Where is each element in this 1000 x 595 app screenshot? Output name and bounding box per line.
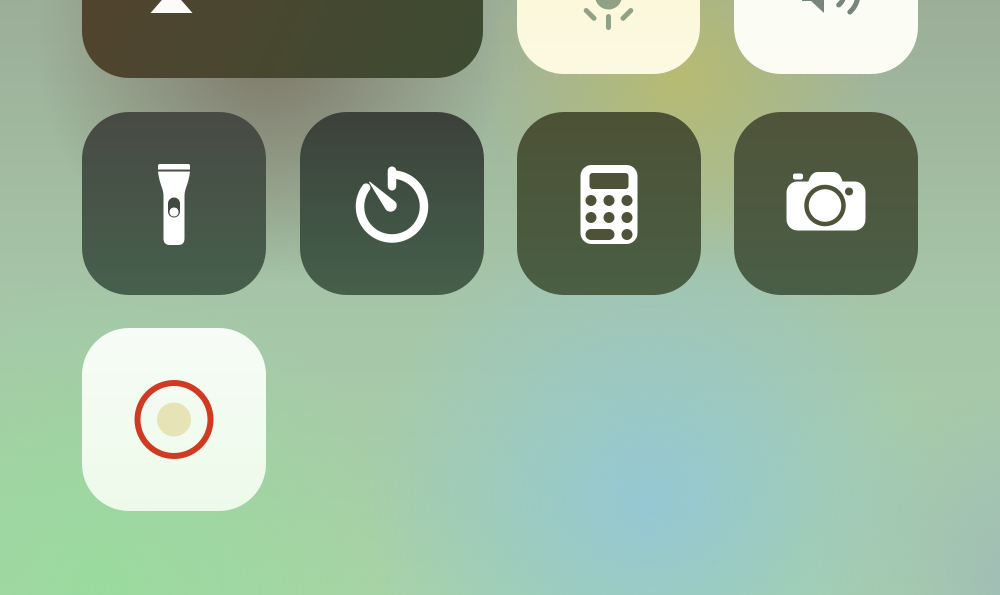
button[interactable]: Volume (734, 0, 918, 74)
button[interactable]: Camera (734, 112, 918, 295)
button[interactable]: Screen Recording (82, 328, 266, 511)
button[interactable]: Brightness (517, 0, 700, 74)
button[interactable]: Timer (300, 112, 484, 295)
button[interactable]: Connectivity (82, 0, 483, 78)
button[interactable]: Calculator (517, 112, 701, 295)
button[interactable]: Flashlight (82, 112, 266, 295)
